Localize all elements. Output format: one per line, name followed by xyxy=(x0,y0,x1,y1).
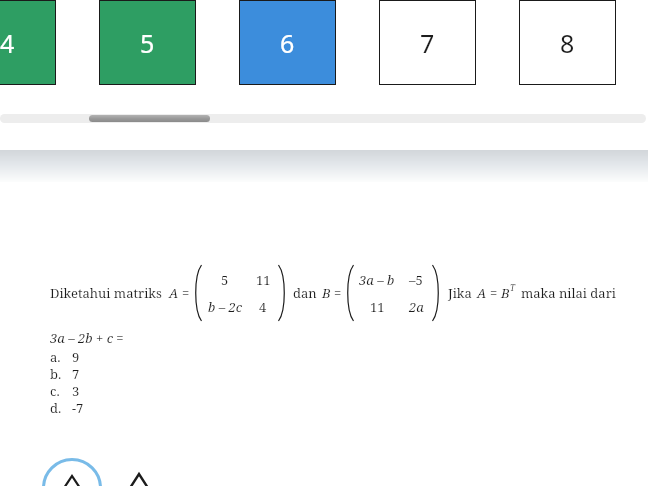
staticText: Diketahui matriks xyxy=(50,284,162,302)
staticText: 3a – 2b + c = xyxy=(50,329,124,347)
staticText: -7 xyxy=(72,399,84,416)
staticText: a. xyxy=(50,348,61,365)
button[interactable] xyxy=(89,115,210,122)
staticText: d. xyxy=(50,399,62,416)
other: Loading xyxy=(42,458,102,486)
other: Page 6 xyxy=(239,0,336,85)
staticText: 5 xyxy=(221,271,229,289)
button[interactable]: 4 xyxy=(0,0,56,85)
staticText: 3a – b xyxy=(359,271,395,289)
staticText: B xyxy=(501,284,510,302)
staticText: Jika xyxy=(448,284,472,302)
staticText: = xyxy=(182,284,190,302)
staticText: 8 xyxy=(560,26,575,60)
staticText: B xyxy=(322,284,331,302)
staticText: –5 xyxy=(409,271,423,289)
button[interactable]: 6 xyxy=(239,0,336,85)
staticText: T xyxy=(510,282,515,293)
staticText: 5 xyxy=(140,26,155,60)
staticText: dan xyxy=(293,284,317,302)
staticText: = xyxy=(334,284,342,302)
staticText: 4 xyxy=(0,26,15,60)
staticText: 11 xyxy=(370,298,385,316)
staticText: 3 xyxy=(72,382,80,399)
staticText: 7 xyxy=(420,26,435,60)
staticText: c. xyxy=(50,382,60,399)
staticText: 6 xyxy=(280,26,295,60)
staticText: 11 xyxy=(256,271,271,289)
staticText: A xyxy=(477,284,487,302)
staticText: A xyxy=(169,284,179,302)
other: Page 8 xyxy=(519,0,616,85)
staticText: b. xyxy=(50,365,62,382)
staticText: maka nilai dari xyxy=(521,284,616,302)
staticText: 9 xyxy=(72,348,80,365)
other: Page 7 xyxy=(379,0,476,85)
staticText: 7 xyxy=(72,365,80,382)
other: Page 5 xyxy=(99,0,196,85)
staticText: 4 xyxy=(259,298,267,316)
other: Page 4 xyxy=(0,0,56,85)
button[interactable]: 8 xyxy=(519,0,616,85)
staticText: 2a xyxy=(409,298,424,316)
button[interactable]: 5 xyxy=(99,0,196,85)
staticText: b – 2c xyxy=(208,298,243,316)
button[interactable]: 7 xyxy=(379,0,476,85)
staticText: = xyxy=(490,284,498,302)
